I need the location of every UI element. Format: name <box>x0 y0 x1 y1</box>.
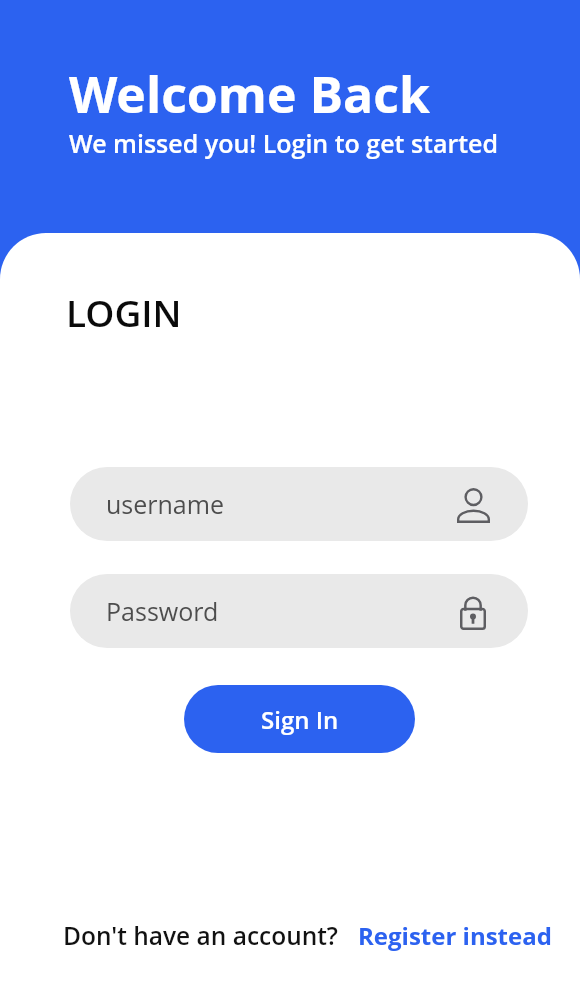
staticText: Welcome Back <box>69 60 430 128</box>
staticText: Sign In <box>261 703 339 736</box>
staticText: Don't have an account? <box>63 919 338 952</box>
staticText: We missed you! Login to get started <box>69 126 499 160</box>
staticText: LOGIN <box>66 287 182 337</box>
staticText: username <box>106 487 225 521</box>
button[interactable]: Password <box>70 574 528 648</box>
staticText: Password <box>106 594 219 628</box>
other: Password <box>460 595 486 630</box>
button[interactable]: Register instead <box>358 919 552 952</box>
other: Username <box>457 488 490 523</box>
button[interactable]: Sign In <box>184 685 415 753</box>
staticText: Register instead <box>358 919 552 952</box>
button[interactable]: username <box>70 467 528 541</box>
